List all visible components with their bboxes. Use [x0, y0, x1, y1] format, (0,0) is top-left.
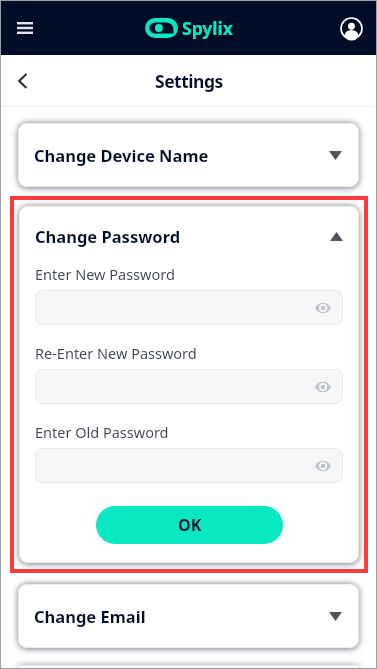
- staticText: Enter New Password: [35, 264, 175, 284]
- button[interactable]: [18, 665, 359, 669]
- staticText: Re-Enter New Password: [35, 343, 197, 363]
- button[interactable]: Change Device Name: [18, 123, 359, 187]
- staticText: Change Email: [34, 605, 146, 627]
- button[interactable]: OK: [96, 506, 283, 544]
- button[interactable]: Change Email: [18, 584, 359, 648]
- staticText: Change Device Name: [34, 144, 209, 166]
- button[interactable]: Toggle password visibility: [35, 448, 343, 483]
- button[interactable]: Toggle password visibility: [313, 377, 333, 397]
- staticText: OK: [178, 514, 202, 536]
- button[interactable]: Toggle password visibility: [35, 290, 343, 325]
- button[interactable]: Menu: [9, 12, 41, 44]
- button[interactable]: Account: [336, 13, 366, 43]
- button[interactable]: Toggle password visibility: [313, 456, 333, 476]
- button[interactable]: Toggle password visibility: [313, 298, 333, 318]
- staticText: Change Password: [35, 225, 181, 247]
- staticText: Enter Old Password: [35, 422, 169, 442]
- staticText: Spylix: [182, 16, 233, 40]
- button[interactable]: Toggle password visibility: [35, 369, 343, 404]
- button[interactable]: Back: [7, 65, 39, 97]
- staticText: Settings: [155, 69, 223, 93]
- button[interactable]: Change Password: [35, 225, 343, 247]
